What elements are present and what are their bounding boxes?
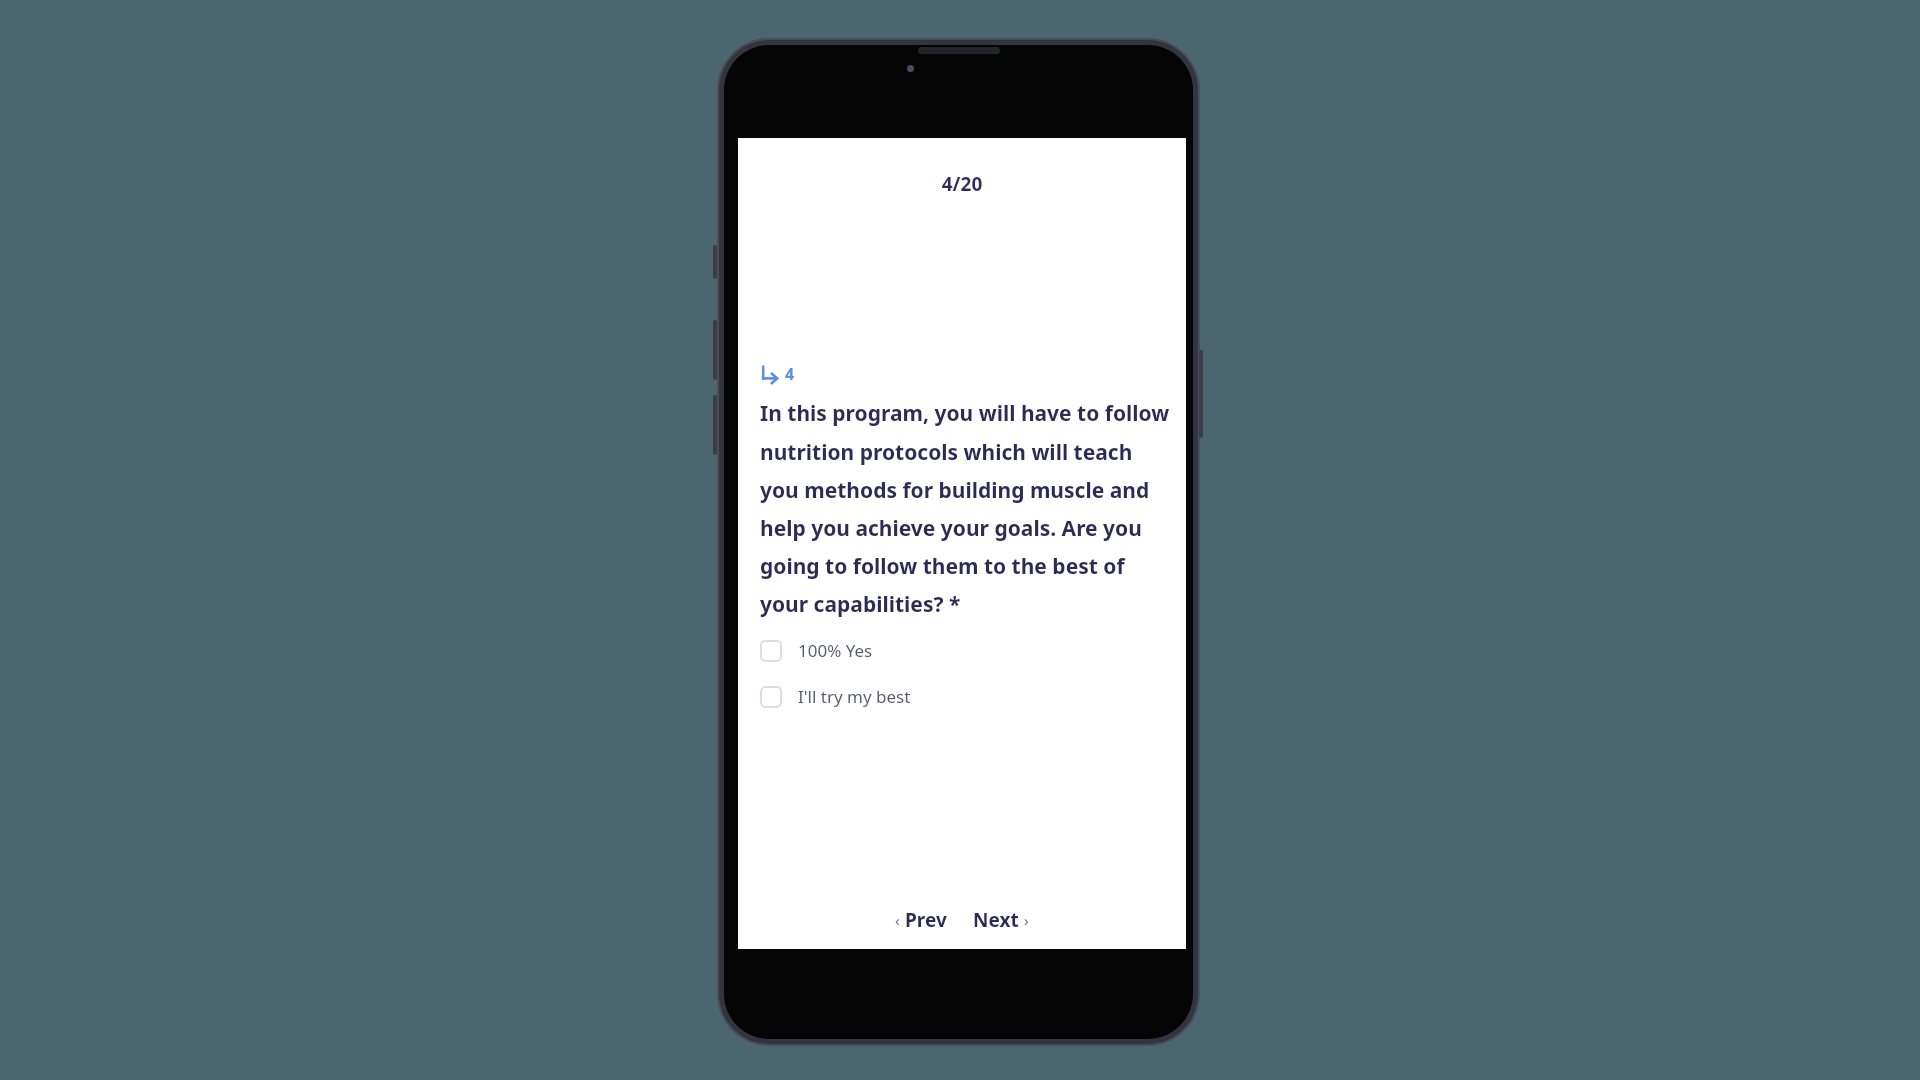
staticText: Next — [973, 907, 1019, 933]
staticText: I'll try my best — [798, 685, 911, 708]
staticText: ‹ — [895, 910, 900, 930]
button[interactable]: I'll try my best — [760, 682, 1170, 711]
staticText: 4/20 — [738, 171, 1186, 197]
staticText: 100% Yes — [798, 639, 873, 662]
staticText: 4 — [785, 363, 795, 385]
button[interactable]: 100% Yes — [760, 636, 1170, 665]
button[interactable]: ‹ — [889, 901, 953, 939]
staticText: In this program, you will have to follow… — [760, 399, 1170, 618]
button[interactable]: Next — [967, 901, 1035, 939]
staticText: › — [1024, 910, 1029, 930]
other: Question four indicator — [760, 364, 780, 384]
staticText: Prev — [905, 907, 947, 933]
